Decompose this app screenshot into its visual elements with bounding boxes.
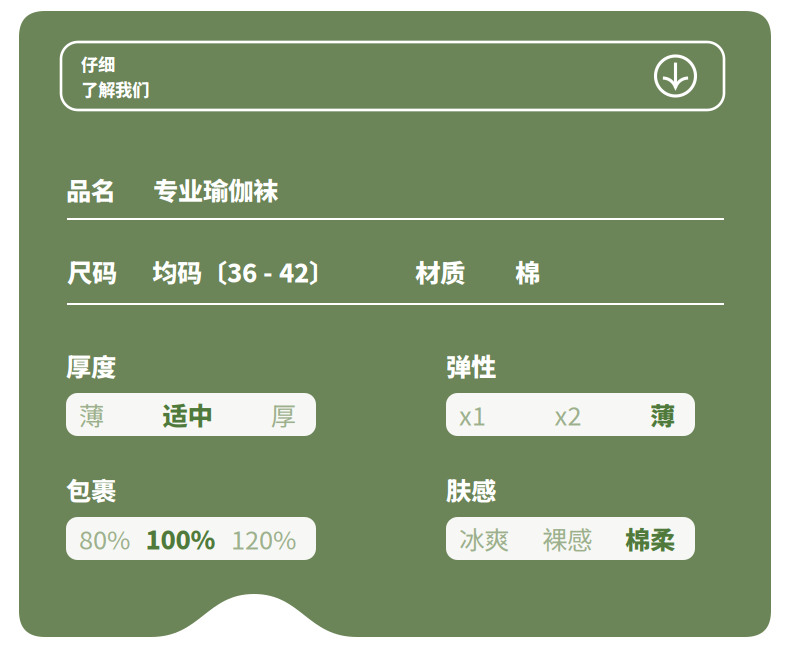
staticText: 棉 [515,253,540,290]
staticText: 专业瑜伽袜 [153,171,278,208]
staticText: 100% [145,520,215,557]
staticText: 冰爽 [459,520,509,557]
staticText: 薄 [79,396,104,433]
button[interactable]: 薄 [66,393,316,436]
staticText: 仔细 [81,51,115,76]
staticText: 120% [231,520,296,557]
staticText: 厚 [271,396,296,433]
staticText: 薄 [650,396,675,433]
staticText: 均码〔36 - 42〕 [152,253,334,290]
button[interactable]: 仔细 [61,42,724,110]
staticText: 肤感 [446,471,496,508]
staticText: 品名 [66,171,116,208]
staticText: 裸感 [542,520,592,557]
staticText: 80% [79,520,130,557]
staticText: 包裹 [66,471,116,508]
staticText: 弹性 [446,347,496,384]
staticText: x2 [554,396,581,433]
button[interactable]: 80% [66,517,316,560]
staticText: 尺码 [67,253,117,290]
staticText: 厚度 [66,347,116,384]
staticText: 棉柔 [625,520,675,557]
button[interactable]: x1 [446,393,695,436]
staticText: x1 [459,396,486,433]
button[interactable]: 冰爽 [446,517,695,560]
staticText: 了解我们 [81,76,149,101]
staticText: 材质 [415,253,465,290]
staticText: 适中 [162,396,212,433]
